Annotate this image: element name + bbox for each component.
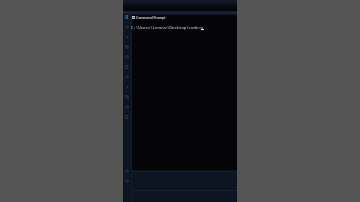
button[interactable]: Explorer	[123, 12, 131, 22]
staticText: C:\Users\Lenovo\Desktop\code>g	[131, 25, 203, 30]
button[interactable]: Docker	[123, 82, 131, 92]
staticText: Command Prompt	[136, 15, 166, 20]
button[interactable]: Accounts	[123, 166, 131, 176]
button[interactable]: Testing	[123, 72, 131, 82]
button[interactable]: Run and debug	[123, 42, 131, 52]
button[interactable]: Manage settings	[123, 176, 131, 186]
button[interactable]: Database	[123, 92, 131, 102]
button[interactable]: Todo tree	[123, 102, 131, 112]
button[interactable]: More actions	[123, 112, 131, 122]
button[interactable]: Remote explorer	[123, 62, 131, 72]
button[interactable]: Source control	[123, 32, 131, 42]
button[interactable]: Command Prompt	[132, 14, 166, 21]
button[interactable]: Search	[123, 22, 131, 32]
button[interactable]: Extensions	[123, 52, 131, 62]
